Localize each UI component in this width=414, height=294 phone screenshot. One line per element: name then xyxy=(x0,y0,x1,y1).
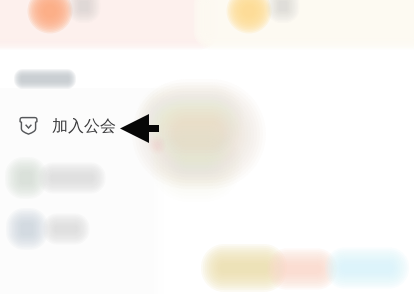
button[interactable]: 加入公会 xyxy=(0,108,158,144)
staticText: 加入公会 xyxy=(52,116,116,136)
